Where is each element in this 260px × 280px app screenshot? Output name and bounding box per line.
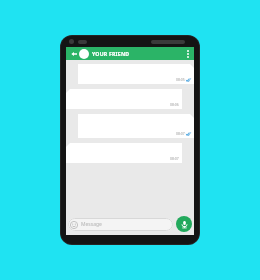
button[interactable]: Message	[68, 218, 173, 231]
button[interactable]: 08:07	[66, 143, 194, 163]
button[interactable]: Voice message	[176, 216, 192, 232]
staticText: YOUR FRIEND	[92, 50, 130, 57]
button[interactable]: Back	[69, 49, 78, 58]
staticText: 08:05	[176, 77, 185, 82]
staticText: Message	[81, 221, 102, 228]
staticText: 08:07	[170, 156, 179, 161]
button[interactable]: Contact photo	[79, 49, 89, 59]
button[interactable]: 08:07	[66, 114, 194, 138]
staticText: 08:07	[176, 131, 185, 136]
button[interactable]: 08:05	[66, 64, 194, 84]
staticText: 08:06	[170, 102, 179, 107]
button[interactable]: More options	[183, 47, 192, 60]
button[interactable]: 08:06	[66, 89, 194, 109]
